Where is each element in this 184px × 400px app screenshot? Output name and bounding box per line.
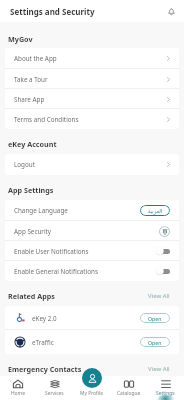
staticText: Open	[148, 339, 162, 346]
staticText: App Settings	[8, 185, 54, 195]
button[interactable]: Enable User Notifications	[5, 241, 179, 261]
staticText: View All	[148, 292, 170, 300]
button[interactable]: Home	[0, 376, 36, 400]
staticText: Open	[148, 315, 162, 322]
button[interactable]: About the App	[5, 48, 179, 69]
staticText: Home	[11, 390, 25, 397]
staticText: العربية	[148, 208, 163, 214]
button[interactable]: Logout	[5, 154, 179, 175]
staticText: Catalogue	[117, 390, 141, 397]
button[interactable]: My Profile	[73, 376, 110, 400]
staticText: eKey Account	[8, 139, 57, 149]
staticText: Share App	[14, 95, 45, 104]
staticText: Logout	[14, 160, 35, 169]
button[interactable]: العربية	[140, 205, 170, 216]
button[interactable]: Toggle	[156, 247, 170, 255]
button[interactable]: Notifications	[164, 4, 178, 18]
staticText: Related Apps	[8, 291, 55, 301]
button[interactable]: App Security	[5, 221, 179, 241]
button[interactable]: eTraffic	[5, 330, 179, 354]
staticText: Terms and Conditions	[14, 115, 79, 124]
staticText: Change Language	[14, 206, 68, 215]
button[interactable]: Catalogue	[110, 376, 147, 400]
button[interactable]: Change Language	[5, 200, 179, 221]
staticText: View All	[148, 365, 170, 373]
button[interactable]: eKey 2.0	[5, 306, 179, 330]
button[interactable]: Settings	[147, 376, 184, 400]
staticText: Emergency Contacts	[8, 364, 82, 374]
staticText: Enable User Notifications	[14, 247, 89, 256]
button[interactable]: View All	[148, 292, 170, 300]
button[interactable]: Share App	[5, 89, 179, 109]
staticText: eTraffic	[32, 338, 54, 347]
staticText: Settings and Security	[10, 6, 95, 17]
button[interactable]: Terms and Conditions	[5, 109, 179, 129]
button[interactable]: Take a Tour	[5, 69, 179, 89]
staticText: eKey 2.0	[32, 314, 57, 323]
staticText: App Security	[14, 227, 52, 236]
button[interactable]: Toggle	[156, 267, 170, 275]
staticText: Take a Tour	[14, 75, 48, 84]
staticText: Settings	[156, 390, 175, 397]
staticText: About the App	[14, 54, 57, 63]
button[interactable]: Enable General Notifications	[5, 261, 179, 281]
staticText: Services	[45, 390, 64, 397]
button[interactable]: View All	[148, 365, 170, 373]
staticText: MyGov	[8, 34, 33, 44]
staticText: Enable General Notifications	[14, 267, 98, 276]
button[interactable]: Services	[36, 376, 73, 400]
button[interactable]: Open	[140, 313, 170, 323]
button[interactable]: Open	[140, 337, 170, 347]
button[interactable]: App Security	[159, 226, 170, 237]
button[interactable]: My Profile	[82, 368, 102, 388]
staticText: My Profile	[80, 390, 104, 397]
